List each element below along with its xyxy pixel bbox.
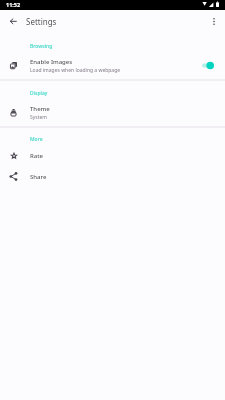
staticText: Browsing xyxy=(30,43,53,50)
staticText: Load images when loading a webpage xyxy=(30,67,121,74)
staticText: 11:52 xyxy=(6,1,21,8)
staticText: Display xyxy=(30,90,48,97)
staticText: Share xyxy=(30,173,47,181)
button[interactable]: Enable Images xyxy=(0,54,225,77)
staticText: More xyxy=(30,136,43,143)
staticText: Theme xyxy=(30,105,50,113)
staticText: Rate xyxy=(30,152,43,160)
staticText: Settings xyxy=(26,16,57,27)
staticText: System xyxy=(30,114,47,121)
staticText: Enable Images xyxy=(30,58,73,66)
button[interactable]: Rate xyxy=(0,145,225,166)
button[interactable]: Back xyxy=(3,11,24,32)
button[interactable]: More options xyxy=(205,12,223,30)
button[interactable]: Enable Images, on xyxy=(202,60,216,71)
button[interactable]: Theme xyxy=(0,101,225,124)
button[interactable]: Share xyxy=(0,166,225,187)
